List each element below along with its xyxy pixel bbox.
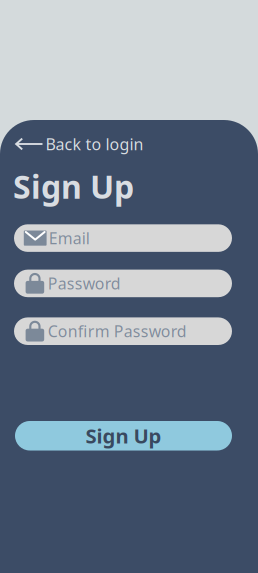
button[interactable]: Sign Up <box>15 421 232 450</box>
staticText: Back to login <box>45 133 143 155</box>
staticText: Sign Up <box>85 422 161 449</box>
button[interactable]: Password <box>14 270 232 297</box>
staticText: Password <box>48 273 121 294</box>
staticText: Sign Up <box>13 164 134 208</box>
button[interactable]: Back to login <box>15 132 147 156</box>
button[interactable]: Confirm Password <box>14 317 232 345</box>
button[interactable]: Email <box>14 224 232 252</box>
staticText: Email <box>49 227 90 249</box>
staticText: Confirm Password <box>48 320 187 342</box>
